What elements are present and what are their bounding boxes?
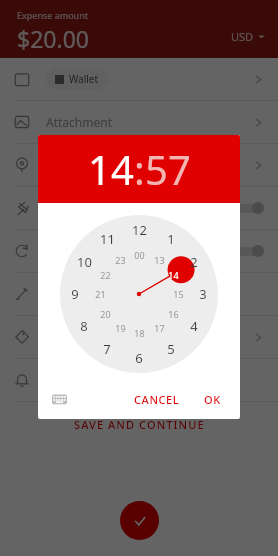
button[interactable]: USD xyxy=(231,29,265,44)
button[interactable]: 57 xyxy=(145,142,191,196)
staticText: 14 xyxy=(168,269,179,281)
staticText: 21 xyxy=(95,288,106,300)
staticText: 1 xyxy=(167,230,175,248)
button[interactable]: 13 xyxy=(148,249,170,271)
button[interactable]: SAVE AND CONTINUE xyxy=(62,412,217,437)
button[interactable] xyxy=(0,273,278,316)
staticText: CANCEL xyxy=(134,392,180,407)
staticText: 8 xyxy=(80,317,88,335)
button[interactable]: Confirm xyxy=(120,501,159,540)
button[interactable]: 1 xyxy=(160,228,182,250)
staticText: 16 xyxy=(168,308,179,320)
staticText: 2 xyxy=(190,253,198,271)
staticText: 3 xyxy=(199,285,207,303)
staticText: OK xyxy=(204,392,221,407)
button[interactable]: 23 xyxy=(109,249,131,271)
staticText: 9 xyxy=(71,285,79,303)
button[interactable]: 2 xyxy=(183,251,205,273)
staticText: 19 xyxy=(115,322,126,334)
button[interactable]: Wallet xyxy=(0,58,278,101)
staticText: : xyxy=(134,142,145,196)
staticText: 11 xyxy=(100,230,115,248)
button[interactable]: 3 xyxy=(192,283,214,305)
button[interactable]: 18 xyxy=(128,322,150,344)
staticText: Expense amount xyxy=(17,9,88,21)
button[interactable]: 9 xyxy=(64,283,86,305)
button[interactable]: 17 xyxy=(148,317,170,339)
button[interactable]: 8 xyxy=(73,315,95,337)
button[interactable]: 14 xyxy=(88,142,134,196)
button[interactable]: 10 xyxy=(73,251,95,273)
staticText: 22 xyxy=(100,269,111,281)
staticText: 14 xyxy=(88,142,134,196)
staticText: 4 xyxy=(190,317,198,335)
button[interactable]: Switch to text input xyxy=(50,390,68,408)
button[interactable]: 19 xyxy=(109,317,131,339)
staticText: 57 xyxy=(145,142,191,196)
button[interactable]: 21 xyxy=(89,283,111,305)
button[interactable]: 15 xyxy=(167,283,189,305)
button[interactable] xyxy=(0,359,278,402)
staticText: 12 xyxy=(132,221,147,239)
staticText: 5 xyxy=(167,340,175,358)
button[interactable] xyxy=(0,187,278,230)
button[interactable]: Attachment xyxy=(0,101,278,144)
button[interactable]: 11 xyxy=(96,228,118,250)
staticText: 20 xyxy=(100,308,111,320)
staticText: 00 xyxy=(134,249,145,261)
button[interactable]: 5 xyxy=(160,338,182,360)
button[interactable]: 20 xyxy=(94,303,116,325)
button[interactable]: 14 xyxy=(162,264,184,286)
button[interactable]: 12 xyxy=(128,219,150,241)
staticText: 15 xyxy=(173,288,184,300)
button[interactable]: 22 xyxy=(94,264,116,286)
staticText: 10 xyxy=(77,253,92,271)
button[interactable]: 4 xyxy=(183,315,205,337)
button[interactable]: 00 xyxy=(128,244,150,266)
staticText: SAVE AND CONTINUE xyxy=(74,417,205,432)
button[interactable] xyxy=(0,144,278,187)
button[interactable]: CANCEL xyxy=(127,388,187,411)
button[interactable]: 7 xyxy=(96,338,118,360)
button[interactable]: 6 xyxy=(128,347,150,369)
staticText: USD xyxy=(231,29,254,44)
staticText: 17 xyxy=(154,322,165,334)
button[interactable]: OK xyxy=(197,388,228,411)
staticText: 13 xyxy=(154,254,165,266)
button[interactable]: 16 xyxy=(162,303,184,325)
staticText: Wallet xyxy=(69,72,99,86)
staticText: $20.00 xyxy=(17,23,89,54)
staticText: 23 xyxy=(115,254,126,266)
staticText: 18 xyxy=(134,327,145,339)
staticText: 6 xyxy=(135,349,143,367)
button[interactable] xyxy=(0,230,278,273)
staticText: Attachment xyxy=(46,114,112,130)
staticText: 7 xyxy=(103,340,111,358)
button[interactable] xyxy=(0,316,278,359)
